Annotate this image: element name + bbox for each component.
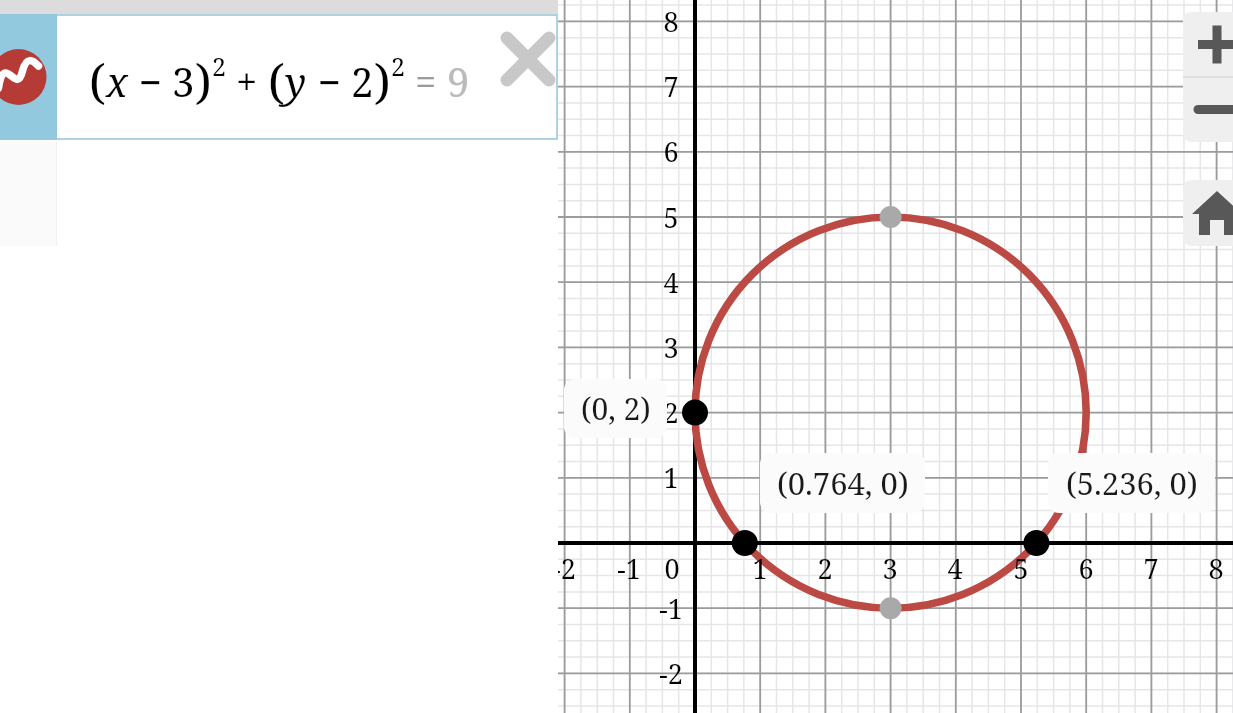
staticText: 5 (998, 550, 1044, 586)
button[interactable]: Delete expression (493, 24, 563, 94)
staticText: 8 (1193, 550, 1233, 586)
staticText: 9 (447, 54, 470, 108)
staticText: ( (268, 48, 285, 113)
staticText: ) (195, 48, 212, 113)
staticText: 4 (932, 550, 978, 586)
staticText: -1 (648, 590, 694, 626)
staticText: -2 (541, 550, 587, 586)
staticText: -1 (606, 550, 652, 586)
staticText: 3 (867, 550, 913, 586)
staticText: (0, 2) (581, 388, 651, 429)
staticText: ( (89, 48, 106, 113)
staticText: 7 (1128, 550, 1174, 586)
staticText: 2 (212, 49, 226, 83)
staticText: 3 (648, 329, 694, 365)
staticText: -2 (648, 655, 694, 691)
button[interactable]: Expression color (0, 14, 57, 140)
staticText: − 2 (307, 54, 374, 108)
button[interactable]: ( (57, 14, 558, 140)
button[interactable]: Home (1183, 180, 1233, 246)
staticText: = (405, 55, 447, 107)
staticText: 2 (391, 49, 405, 83)
staticText: 2 (648, 394, 694, 430)
staticText: − 3 (128, 54, 195, 108)
staticText: 7 (648, 68, 694, 104)
staticText: 6 (648, 133, 694, 169)
button[interactable]: Zoom in (1183, 12, 1233, 77)
staticText: 2 (802, 550, 848, 586)
staticText: + (226, 55, 268, 107)
staticText: ) (374, 48, 391, 113)
staticText: x (106, 54, 128, 108)
button[interactable]: (0, 2) (564, 379, 667, 438)
button[interactable]: Zoom out (1183, 77, 1233, 142)
staticText: 6 (1063, 550, 1109, 586)
staticText: (0.764, 0) (777, 462, 909, 504)
staticText: 8 (648, 3, 694, 39)
staticText: 0 (649, 550, 695, 586)
staticText: (5.236, 0) (1066, 462, 1198, 504)
staticText: 4 (648, 264, 694, 300)
staticText: 5 (648, 199, 694, 235)
staticText: 1 (648, 459, 694, 495)
button[interactable]: (5.236, 0) (1048, 453, 1215, 513)
staticText: 1 (737, 550, 783, 586)
button[interactable]: (0.764, 0) (760, 453, 925, 513)
staticText: y (285, 54, 307, 108)
